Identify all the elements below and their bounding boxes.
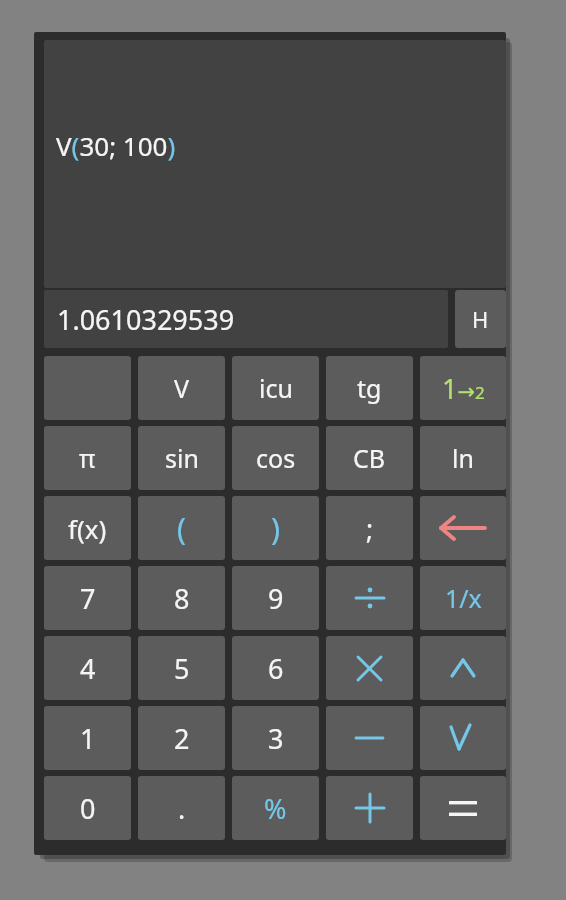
button[interactable]: icu [232, 356, 319, 420]
button[interactable]: H [455, 290, 506, 348]
staticText: ; [366, 510, 374, 547]
button[interactable]: 8 [138, 566, 225, 630]
button[interactable]: ) [232, 496, 319, 560]
staticText: ln [452, 441, 474, 475]
button[interactable]: % [232, 776, 319, 840]
button[interactable]: Backspace [420, 496, 506, 560]
button[interactable]: 6 [232, 636, 319, 700]
button[interactable]: π [44, 426, 131, 490]
staticText: ( [177, 508, 186, 549]
staticText: cos [256, 441, 296, 475]
button[interactable]: 1/x [420, 566, 506, 630]
staticText: . [178, 790, 186, 827]
button[interactable]: Subtract [326, 706, 413, 770]
button[interactable]: 2 [138, 706, 225, 770]
staticText: tg [357, 371, 382, 405]
staticText: ) [271, 508, 280, 549]
staticText: 4 [80, 650, 96, 687]
staticText: f(x) [68, 511, 107, 546]
staticText: V [174, 371, 190, 405]
button[interactable]: 5 [138, 636, 225, 700]
staticText: 3 [268, 720, 284, 757]
button[interactable]: ; [326, 496, 413, 560]
button[interactable]: Square root [420, 706, 506, 770]
button[interactable]: . [138, 776, 225, 840]
button[interactable]: Equals [420, 776, 506, 840]
button[interactable]: V [138, 356, 225, 420]
button[interactable]: ( [138, 496, 225, 560]
button[interactable]: 0 [44, 776, 131, 840]
button[interactable]: Divide [326, 566, 413, 630]
staticText: 1 [80, 720, 96, 757]
staticText: 7 [80, 580, 96, 617]
staticText: icu [259, 371, 293, 405]
staticText: % [264, 790, 287, 827]
staticText: 1→2 [442, 370, 485, 407]
button[interactable]: cos [232, 426, 319, 490]
staticText: 5 [174, 650, 190, 687]
button[interactable]: V(30; 100) [44, 40, 506, 288]
staticText: 2 [174, 720, 190, 757]
staticText: π [79, 441, 96, 475]
staticText: sin [165, 441, 199, 475]
button[interactable]: 3 [232, 706, 319, 770]
staticText: 1/x [445, 581, 482, 615]
staticText: 0 [80, 790, 96, 827]
button[interactable]: 9 [232, 566, 319, 630]
staticText: 6 [268, 650, 284, 687]
button[interactable]: 4 [44, 636, 131, 700]
button[interactable]: CB [326, 426, 413, 490]
button[interactable]: sin [138, 426, 225, 490]
button[interactable]: Convert base [420, 356, 506, 420]
staticText: H [472, 304, 489, 334]
button[interactable]: Multiply [326, 636, 413, 700]
button[interactable]: 1 [44, 706, 131, 770]
staticText: CB [353, 441, 386, 475]
button[interactable]: 7 [44, 566, 131, 630]
staticText: V(30; 100) [56, 128, 176, 163]
button[interactable]: tg [326, 356, 413, 420]
staticText: 8 [174, 580, 190, 617]
button[interactable]: Power [420, 636, 506, 700]
staticText: 1.0610329539 [57, 301, 235, 338]
button[interactable]: 1.0610329539 [44, 290, 448, 348]
staticText: 9 [268, 580, 284, 617]
button[interactable]: ln [420, 426, 506, 490]
button[interactable]: f(x) [44, 496, 131, 560]
button[interactable]: Add [326, 776, 413, 840]
